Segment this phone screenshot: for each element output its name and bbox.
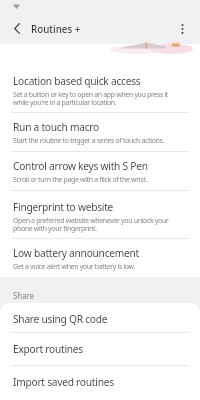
staticText: Run a touch macro [13,120,99,134]
button[interactable]: Control arrow keys with S Pen [0,152,200,191]
button[interactable]: Low battery announcement [0,239,200,277]
button[interactable]: More options [171,18,193,40]
staticText: Low battery announcement [13,246,140,260]
staticText: Export routines [13,342,83,356]
button[interactable]: Navigate up [6,17,28,39]
staticText: Import saved routines [13,375,114,389]
button[interactable]: Fingerprint to website [0,191,200,239]
button[interactable]: Share using QR code [0,303,200,333]
staticText: Scroll or turn the page with a flick of … [13,175,147,185]
staticText: Share [13,290,34,301]
staticText: Fingerprint to website [13,200,114,214]
staticText: Share using QR code [13,312,108,326]
staticText: Get a voice alert when your battery is l… [13,262,135,272]
staticText: Control arrow keys with S Pen [13,159,148,173]
button[interactable]: Run a touch macro [0,113,200,152]
button[interactable]: Location based quick access [0,65,200,113]
staticText: Open a preferred website whenever you un… [13,216,184,233]
staticText: Location based quick access [13,74,141,88]
staticText: Set a button or key to open an app when … [13,90,184,107]
button[interactable]: Export routines [0,333,200,366]
staticText: Start the routine to trigger a series of… [13,136,165,146]
staticText: Routines + [31,23,81,36]
button[interactable]: Import saved routines [0,366,200,400]
